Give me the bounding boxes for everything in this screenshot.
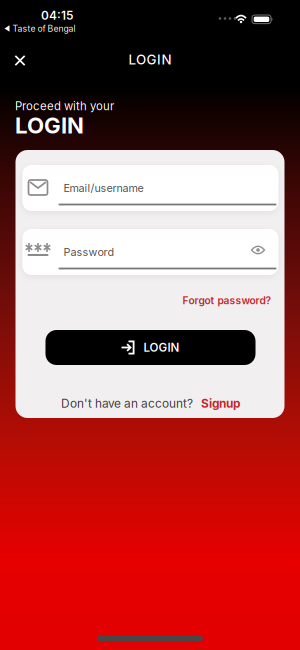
staticText: LOGIN (128, 51, 171, 68)
staticText: Signup (201, 396, 240, 411)
button[interactable]: Close (6, 46, 34, 74)
staticText: Email/username (63, 181, 143, 195)
button[interactable]: Forgot password? (182, 294, 271, 307)
staticText: Password (63, 245, 114, 259)
staticText: LOGIN (15, 112, 84, 139)
button[interactable]: LOGIN (45, 330, 255, 365)
staticText: 04:15 (41, 8, 73, 23)
button[interactable]: Signup (201, 396, 240, 411)
staticText: Taste of Bengal (12, 23, 75, 34)
staticText: Don't have an account? (61, 396, 193, 411)
staticText: Proceed with your (15, 99, 114, 113)
staticText: LOGIN (143, 340, 179, 354)
staticText: Forgot password? (182, 294, 271, 307)
button[interactable]: Show password (247, 240, 268, 260)
